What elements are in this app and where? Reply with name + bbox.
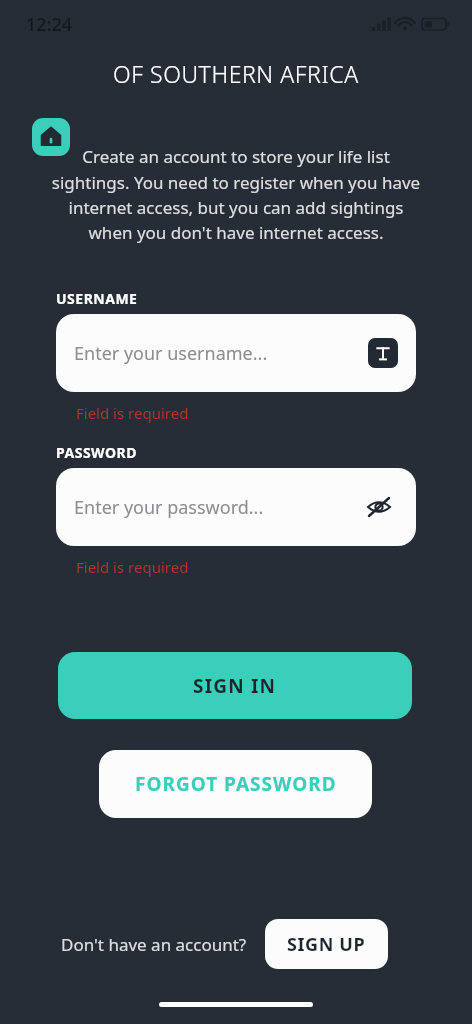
button[interactable]: Show password: [364, 492, 394, 522]
other: Text input: [368, 338, 398, 368]
staticText: 12:24: [26, 12, 73, 37]
staticText: Enter your username...: [74, 341, 368, 366]
staticText: FORGOT PASSWORD: [135, 771, 337, 797]
button[interactable]: Enter your username...: [56, 314, 416, 392]
staticText: Field is required: [76, 403, 189, 423]
button[interactable]: SIGN IN: [58, 652, 412, 719]
staticText: Don't have an account?: [61, 933, 247, 956]
staticText: Field is required: [76, 557, 189, 577]
button[interactable]: FORGOT PASSWORD: [99, 750, 372, 818]
staticText: Create an account to store your life lis…: [50, 145, 422, 244]
staticText: OF SOUTHERN AFRICA: [113, 58, 359, 89]
button[interactable]: Enter your password...: [56, 468, 416, 546]
staticText: Enter your password...: [74, 495, 364, 520]
staticText: SIGN IN: [193, 673, 277, 699]
staticText: SIGN UP: [287, 932, 366, 957]
button[interactable]: SIGN UP: [265, 919, 388, 969]
staticText: USERNAME: [56, 289, 138, 308]
staticText: PASSWORD: [56, 443, 138, 462]
